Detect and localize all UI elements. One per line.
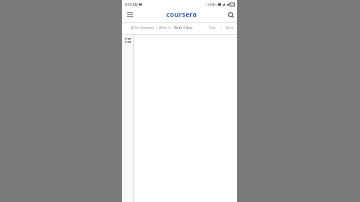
button[interactable]: Menu — [126, 10, 134, 19]
staticText: Week 3 Quiz — [174, 26, 193, 30]
staticText: | — [220, 26, 222, 30]
button[interactable]: Search — [225, 10, 236, 19]
button[interactable]: Course outline — [125, 38, 131, 44]
staticText: coursera — [166, 10, 197, 20]
button[interactable]: Prev — [209, 26, 216, 30]
button[interactable]: Week 3 — [159, 26, 170, 30]
staticText: | — [170, 26, 174, 30]
button[interactable]: AI For Everyone — [131, 26, 155, 30]
staticText: | — [155, 26, 159, 30]
staticText: 8:05 AM — [125, 2, 138, 7]
button[interactable]: Next — [226, 26, 233, 30]
staticText: 1.2KB/s — [205, 2, 217, 7]
